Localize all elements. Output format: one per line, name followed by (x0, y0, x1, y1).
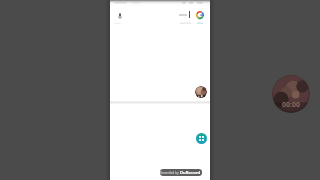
button[interactable]: Profile photo (195, 86, 207, 98)
button[interactable]: Search (110, 5, 210, 23)
button[interactable]: Apps (196, 133, 207, 144)
button[interactable]: Recording preview (272, 75, 310, 113)
staticText: DuRecorder (180, 170, 202, 176)
staticText: Recorded by (160, 171, 180, 175)
staticText: 00:00 (282, 100, 300, 110)
